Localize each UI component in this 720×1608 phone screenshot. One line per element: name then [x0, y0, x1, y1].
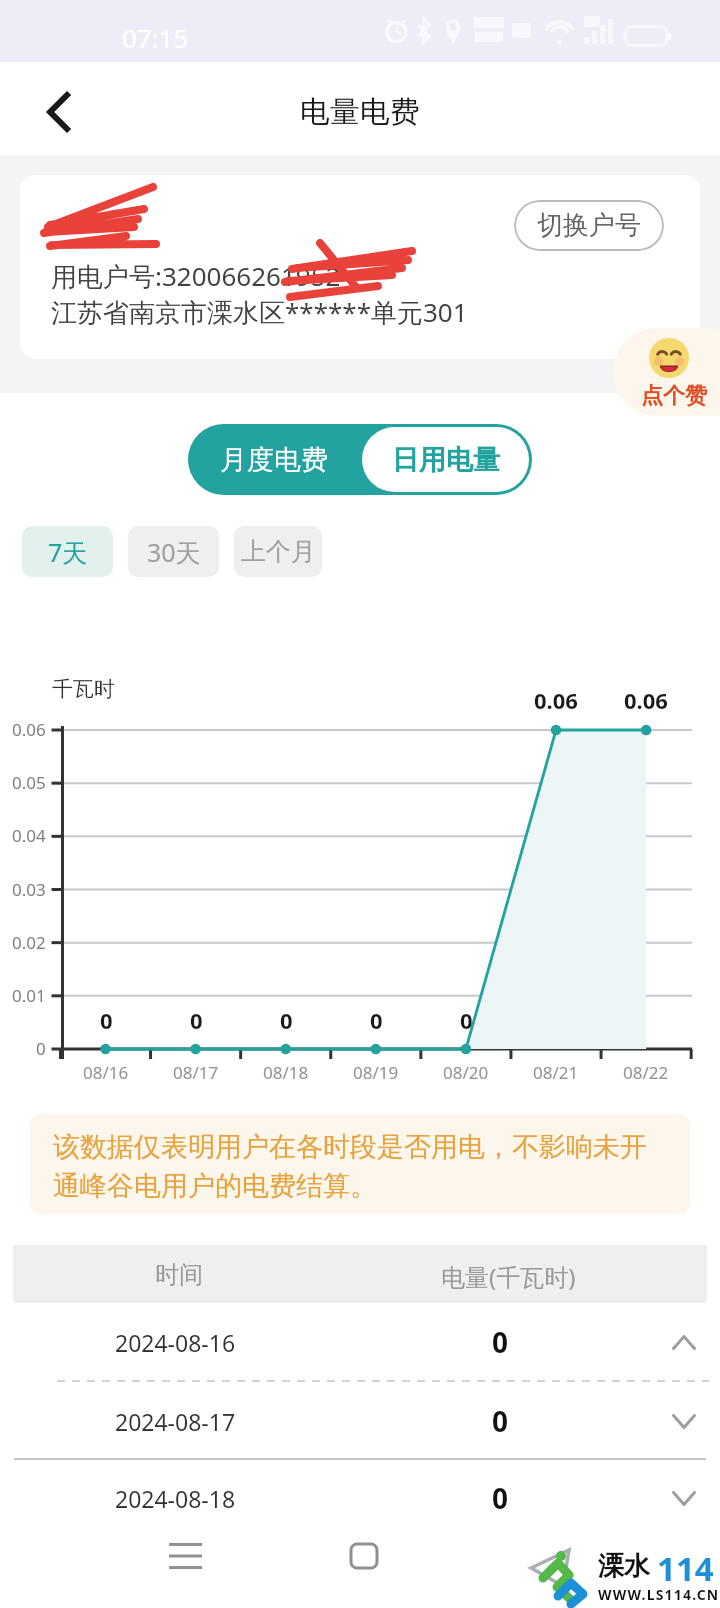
button[interactable]: 30天	[128, 526, 219, 577]
button[interactable]: 主页	[334, 1526, 394, 1586]
staticText: 切换户号	[537, 209, 641, 242]
staticText: 上个月	[241, 536, 316, 567]
staticText: 电量(千瓦时)	[441, 1260, 576, 1293]
button[interactable]: 2024-08-16	[0, 1303, 720, 1381]
staticText: 0	[36, 1037, 46, 1060]
staticText: 2024-08-16	[115, 1327, 236, 1358]
staticText: 07:15	[122, 20, 189, 55]
staticText: 114	[657, 1546, 714, 1591]
staticText: 该数据仅表明用户在各时段是否用电，不影响未开 通峰谷电用户的电费结算。	[53, 1130, 647, 1203]
button[interactable]: 2024-08-18	[0, 1459, 720, 1537]
staticText: 0.06	[624, 685, 668, 715]
staticText: 江苏省南京市溧水区******单元301	[51, 294, 468, 330]
staticText: 7天	[48, 535, 88, 569]
staticText: 08/17	[173, 1061, 219, 1084]
staticText: 0	[280, 1005, 293, 1035]
staticText: 0	[492, 1479, 509, 1517]
staticText: 08/20	[443, 1061, 489, 1084]
staticText: 0.04	[12, 824, 46, 847]
staticText: 08/22	[623, 1061, 669, 1084]
staticText: WWW.LS114.CN	[598, 1585, 720, 1604]
staticText: 月度电费	[220, 443, 328, 477]
staticText: 0.03	[12, 878, 46, 901]
staticText: 时间	[155, 1260, 203, 1290]
staticText: 08/16	[83, 1061, 129, 1084]
staticText: 0	[100, 1005, 113, 1035]
staticText: 0.05	[12, 771, 46, 794]
button[interactable]: 月度电费	[188, 424, 360, 495]
staticText: 日用电量	[392, 443, 500, 477]
staticText: 0	[460, 1005, 473, 1035]
staticText: 08/18	[263, 1061, 309, 1084]
staticText: 2024-08-18	[115, 1483, 236, 1514]
staticText: 溧水	[598, 1550, 650, 1583]
button[interactable]: 切换户号	[514, 200, 664, 251]
staticText: 点个赞	[641, 382, 707, 410]
button[interactable]: 上个月	[234, 526, 322, 577]
staticText: 0	[492, 1402, 509, 1440]
staticText: 2024-08-17	[115, 1406, 236, 1437]
staticText: 0.01	[12, 984, 46, 1007]
staticText: 千瓦时	[52, 676, 115, 702]
staticText: 用电户号:320066261952	[51, 258, 341, 294]
staticText: 0.06	[534, 685, 578, 715]
staticText: 0	[370, 1005, 383, 1035]
staticText: 08/19	[353, 1061, 399, 1084]
staticText: 0.06	[12, 718, 46, 741]
staticText: 0	[190, 1005, 203, 1035]
staticText: 30天	[147, 535, 201, 569]
button[interactable]: 点个赞	[613, 328, 720, 416]
staticText: 0.02	[12, 931, 46, 954]
button[interactable]: 日用电量	[362, 427, 529, 492]
button[interactable]: 2024-08-17	[0, 1382, 720, 1460]
button[interactable]: 7天	[22, 526, 113, 577]
staticText: 电量电费	[300, 93, 420, 131]
staticText: 08/21	[533, 1061, 579, 1084]
button[interactable]: 返回	[30, 82, 90, 142]
button[interactable]: 最近任务	[155, 1526, 215, 1586]
staticText: 0	[492, 1323, 509, 1361]
